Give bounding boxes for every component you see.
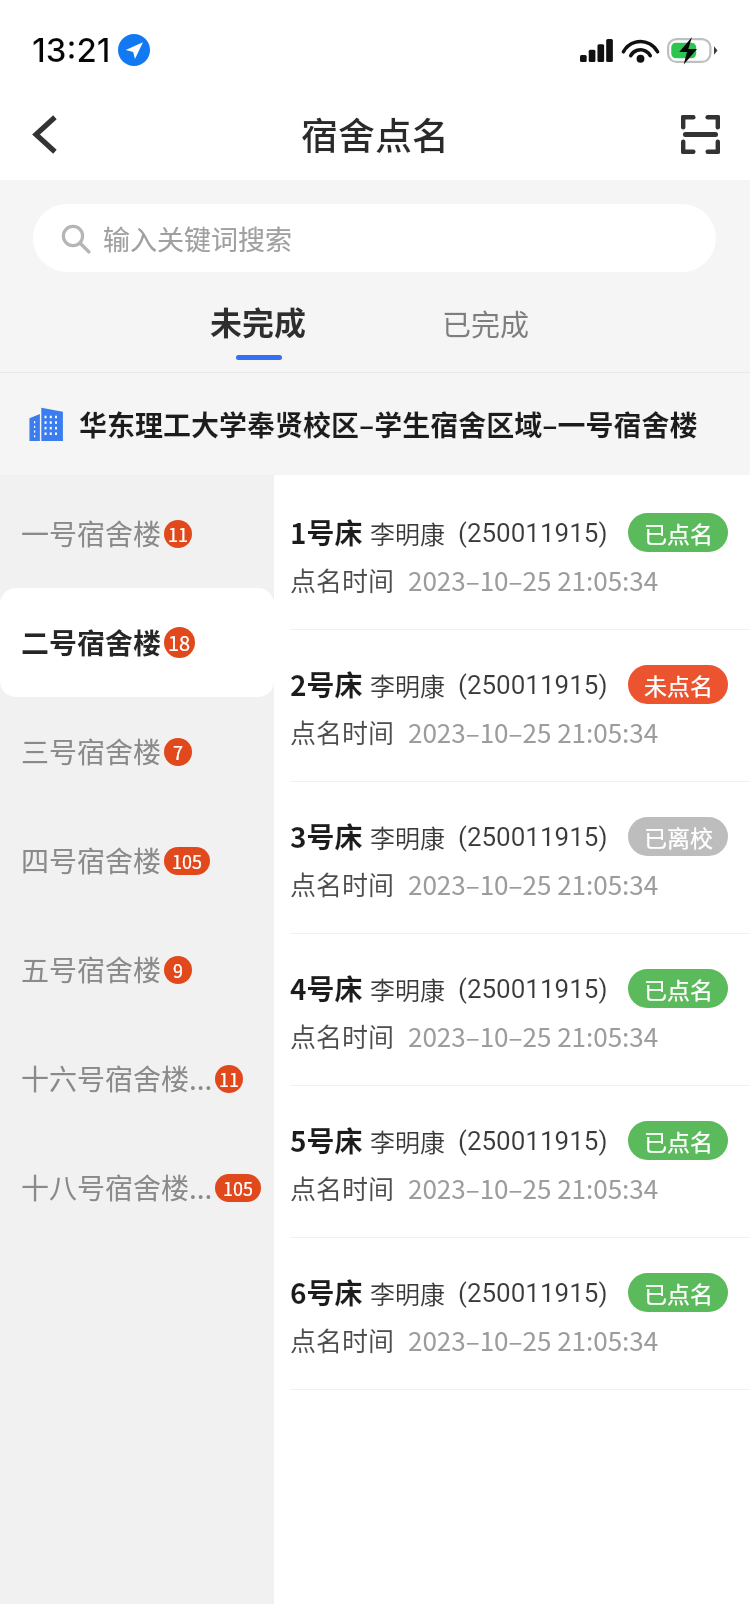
staticText: 已点名 — [644, 1124, 713, 1157]
button[interactable]: 十六号宿舍楼... — [0, 1024, 274, 1133]
staticText: 18 — [168, 628, 191, 657]
staticText: 点名时间 — [290, 713, 395, 751]
staticText: 11 — [168, 521, 188, 547]
button[interactable]: 6号床 — [274, 1238, 750, 1390]
staticText: 2023–10–25 21:05:34 — [408, 1017, 659, 1055]
staticText: 1号床 — [290, 512, 363, 553]
staticText: (250011915) — [458, 1278, 608, 1308]
staticText: 4号床 — [290, 968, 363, 1009]
staticText: 李明康 — [370, 515, 446, 551]
staticText: 点名时间 — [290, 561, 395, 599]
button[interactable]: 一号宿舍楼 — [0, 479, 274, 588]
button[interactable]: 输入关键词搜索 — [33, 204, 716, 272]
staticText: 李明康 — [370, 1275, 446, 1311]
staticText: 华东理工大学奉贤校区–学生宿舍区域–一号宿舍楼 — [79, 404, 698, 445]
button[interactable]: 5号床 — [274, 1086, 750, 1238]
button[interactable]: 已完成 — [442, 284, 530, 370]
button[interactable]: 三号宿舍楼 — [0, 697, 274, 806]
staticText: 已点名 — [644, 972, 713, 1005]
button[interactable]: 五号宿舍楼 — [0, 915, 274, 1024]
staticText: 十六号宿舍楼... — [21, 1058, 213, 1099]
staticText: 2023–10–25 21:05:34 — [408, 865, 659, 903]
button[interactable]: 3号床 — [274, 782, 750, 934]
button[interactable]: 已点名 — [628, 969, 728, 1008]
staticText: 已点名 — [644, 1276, 713, 1309]
button[interactable]: 已点名 — [628, 1121, 728, 1160]
staticText: 7 — [173, 739, 183, 765]
staticText: 已离校 — [644, 820, 713, 853]
button[interactable]: 1号床 — [274, 478, 750, 630]
staticText: 李明康 — [370, 1123, 446, 1159]
staticText: 李明康 — [370, 971, 446, 1007]
staticText: 点名时间 — [290, 1321, 395, 1359]
staticText: (250011915) — [458, 518, 608, 548]
button[interactable]: Scan — [668, 102, 732, 166]
staticText: (250011915) — [458, 974, 608, 1004]
staticText: (250011915) — [458, 822, 608, 852]
staticText: 四号宿舍楼 — [21, 840, 162, 881]
staticText: 105 — [223, 1175, 253, 1201]
staticText: (250011915) — [458, 670, 608, 700]
staticText: 点名时间 — [290, 1017, 395, 1055]
staticText: 十八号宿舍楼... — [21, 1167, 213, 1208]
staticText: 105 — [172, 848, 202, 874]
staticText: 2023–10–25 21:05:34 — [408, 561, 659, 599]
staticText: 2023–10–25 21:05:34 — [408, 1169, 659, 1207]
button[interactable]: 未点名 — [628, 665, 728, 704]
button[interactable]: 二号宿舍楼 — [0, 588, 274, 697]
staticText: 李明康 — [370, 819, 446, 855]
staticText: 2号床 — [290, 664, 363, 705]
button[interactable]: 已点名 — [628, 513, 728, 552]
staticText: 五号宿舍楼 — [21, 949, 162, 990]
staticText: 李明康 — [370, 667, 446, 703]
button[interactable]: Back — [12, 102, 76, 166]
staticText: 13:21 — [32, 30, 111, 70]
staticText: 二号宿舍楼 — [21, 622, 162, 663]
staticText: 5号床 — [290, 1120, 363, 1161]
button[interactable]: 4号床 — [274, 934, 750, 1086]
button[interactable]: 四号宿舍楼 — [0, 806, 274, 915]
button[interactable]: 华东理工大学奉贤校区–学生宿舍区域–一号宿舍楼 — [28, 373, 750, 475]
staticText: 2023–10–25 21:05:34 — [408, 713, 659, 751]
staticText: 3号床 — [290, 816, 363, 857]
staticText: 已点名 — [644, 516, 713, 549]
staticText: 11 — [219, 1066, 239, 1092]
staticText: 9 — [173, 957, 183, 983]
button[interactable]: 已离校 — [628, 817, 728, 856]
staticText: 未完成 — [210, 298, 307, 344]
staticText: 一号宿舍楼 — [21, 513, 162, 554]
staticText: 未点名 — [644, 668, 713, 701]
button[interactable]: 未完成 — [210, 284, 307, 370]
staticText: 三号宿舍楼 — [21, 731, 162, 772]
button[interactable]: 十八号宿舍楼... — [0, 1133, 274, 1242]
staticText: 6号床 — [290, 1272, 363, 1313]
staticText: 输入关键词搜索 — [103, 219, 292, 258]
staticText: 2023–10–25 21:05:34 — [408, 1321, 659, 1359]
button[interactable]: 已点名 — [628, 1273, 728, 1312]
staticText: 点名时间 — [290, 1169, 395, 1207]
button[interactable]: 2号床 — [274, 630, 750, 782]
staticText: (250011915) — [458, 1126, 608, 1156]
staticText: 宿舍点名 — [301, 107, 449, 161]
staticText: 点名时间 — [290, 865, 395, 903]
staticText: 已完成 — [442, 302, 530, 344]
